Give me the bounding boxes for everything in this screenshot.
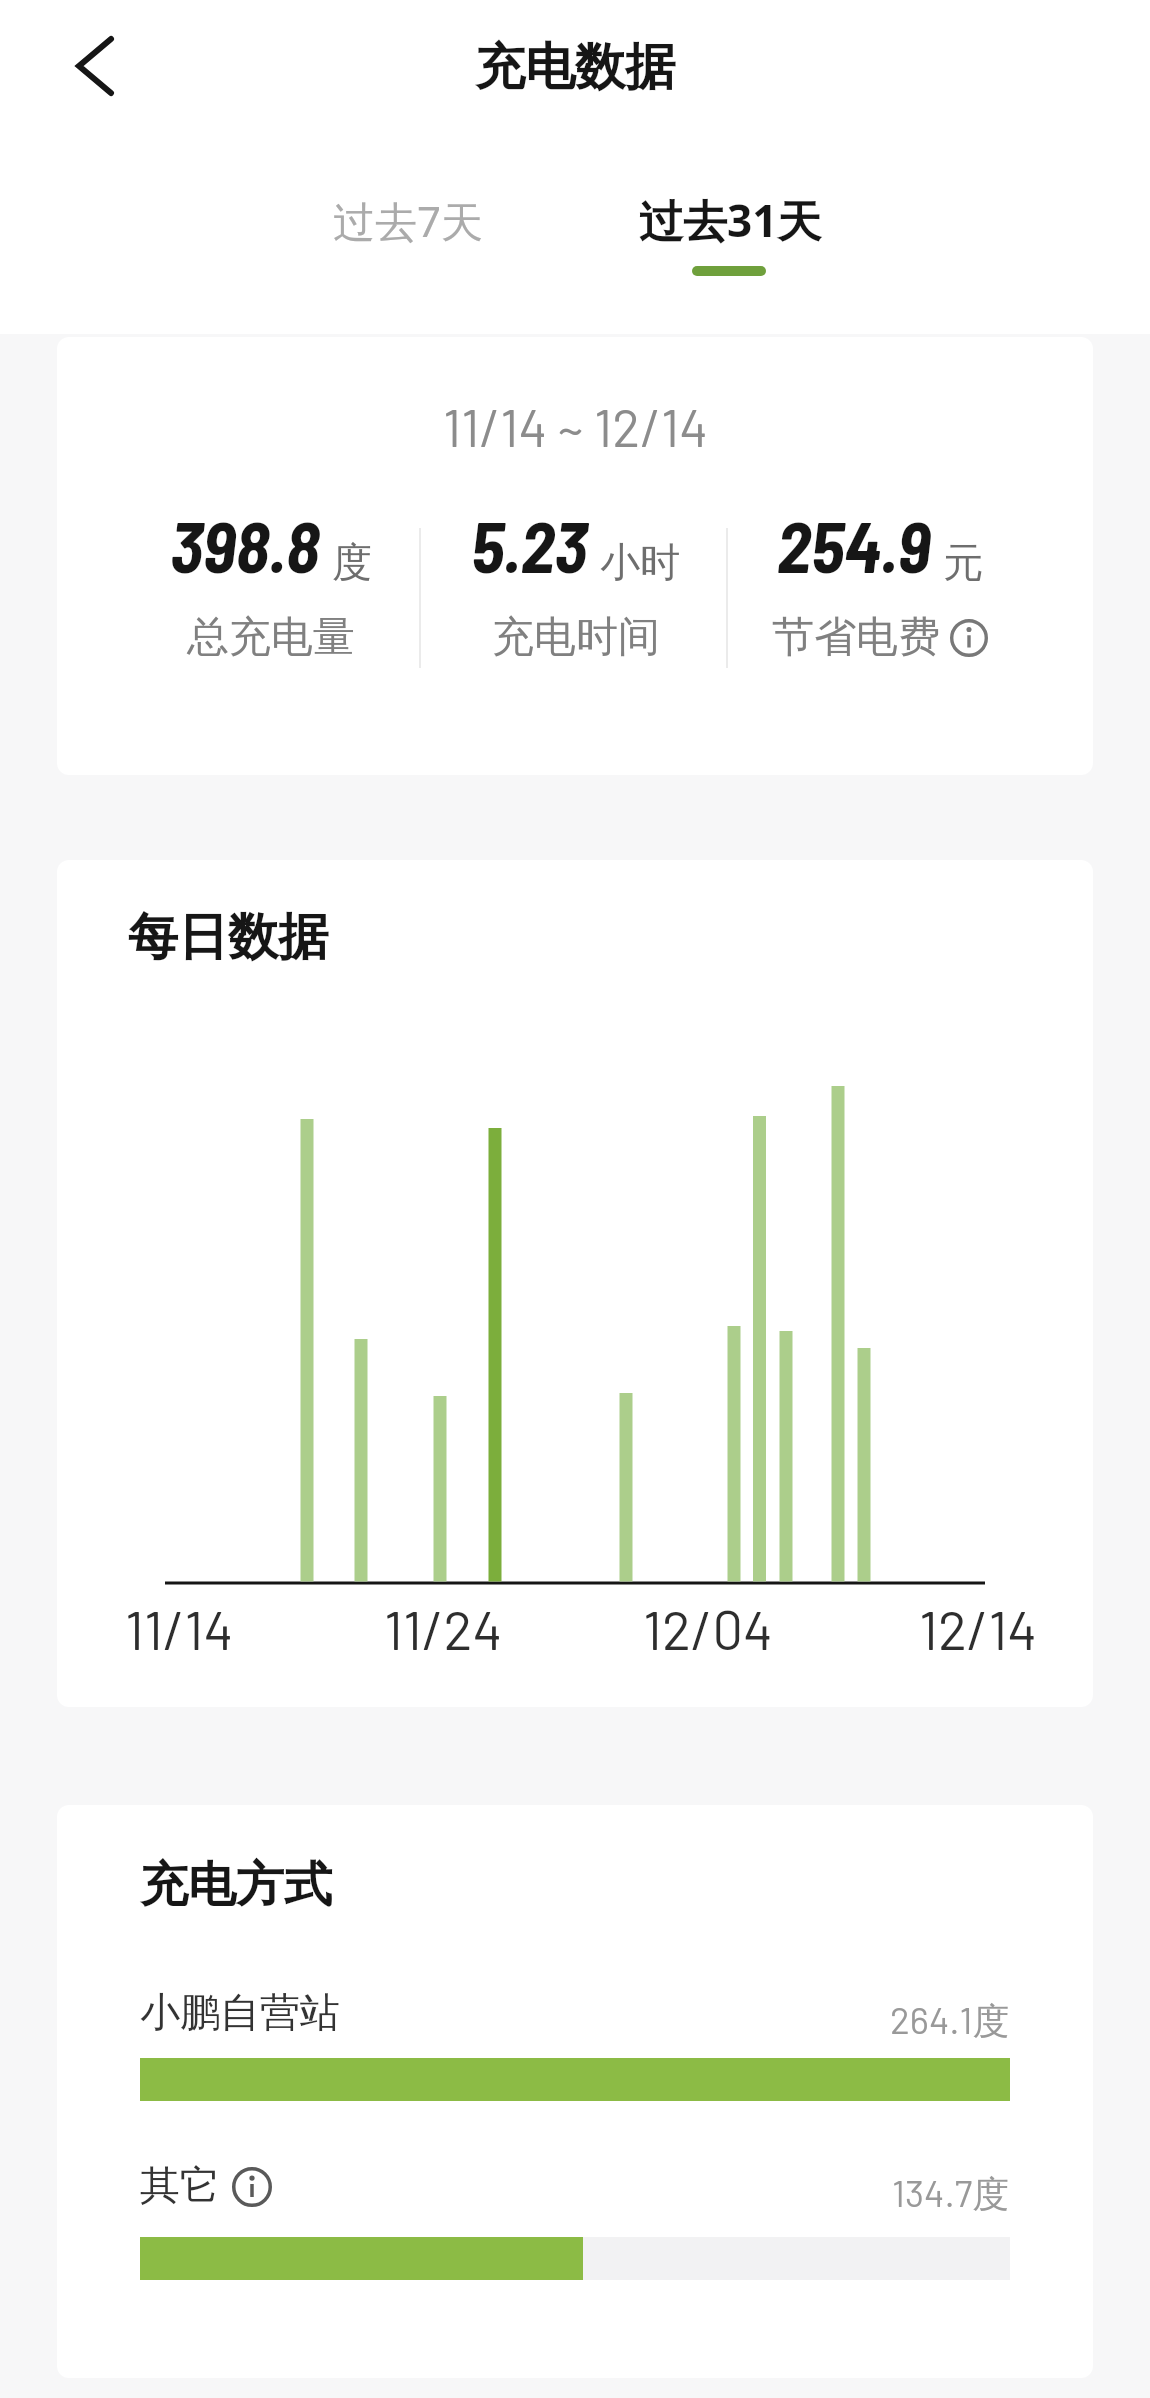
staticText: 元 [943, 537, 983, 587]
staticText: 264.1度 [890, 1997, 1010, 2045]
staticText: 每日数据 [128, 906, 328, 969]
staticText: 充电时间 [492, 611, 660, 664]
staticText: 充电数据 [475, 36, 675, 99]
staticText: 小鹏自营站 [140, 1987, 340, 2037]
staticText: 5.23 [471, 503, 588, 587]
button[interactable]: 过去31天 [590, 180, 870, 260]
staticText: 254.9 [777, 503, 931, 587]
staticText: 充电方式 [140, 1855, 332, 1915]
staticText: 134.7度 [892, 2170, 1010, 2218]
staticText: 过去7天 [333, 192, 484, 249]
staticText: 总充电量 [187, 611, 355, 664]
staticText: 12/04 [643, 1596, 773, 1661]
staticText: 12/14 [919, 1596, 1038, 1661]
staticText: 其它 [140, 2160, 220, 2210]
staticText: 度 [332, 537, 372, 587]
button[interactable]: 过去7天 [268, 180, 548, 260]
staticText: 节省电费 [772, 611, 940, 664]
staticText: 11/24 [384, 1596, 503, 1661]
staticText: 11/14 ~ 12/14 [443, 395, 708, 457]
staticText: 11/14 [125, 1596, 234, 1661]
staticText: 398.8 [170, 503, 320, 587]
staticText: 过去31天 [639, 190, 822, 250]
button[interactable] [45, 18, 145, 113]
staticText: 小时 [600, 537, 680, 587]
